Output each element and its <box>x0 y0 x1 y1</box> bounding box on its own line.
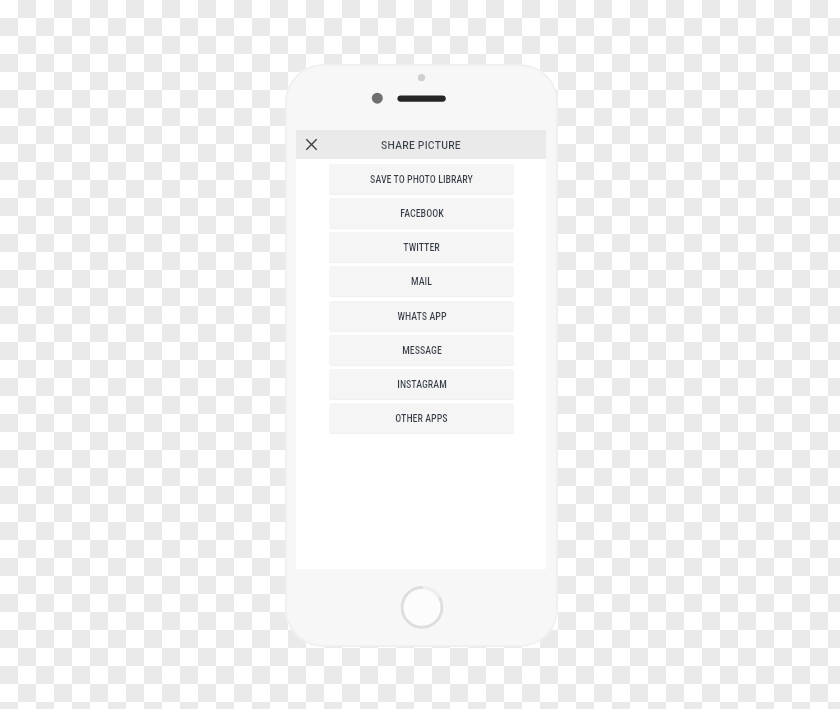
staticText: INSTAGRAM <box>397 379 447 391</box>
button[interactable]: MAIL <box>329 266 514 296</box>
button[interactable]: MESSAGE <box>329 335 514 365</box>
button[interactable]: INSTAGRAM <box>329 369 514 399</box>
button[interactable]: TWITTER <box>329 232 514 262</box>
button[interactable]: FACEBOOK <box>329 198 514 228</box>
button[interactable]: SAVE TO PHOTO LIBRARY <box>329 164 514 194</box>
staticText: TWITTER <box>403 242 440 254</box>
staticText: MESSAGE <box>402 345 442 357</box>
staticText: SAVE TO PHOTO LIBRARY <box>370 174 473 186</box>
staticText: WHATS APP <box>397 311 447 323</box>
staticText: SHARE PICTURE <box>381 139 461 151</box>
button[interactable]: OTHER APPS <box>329 403 514 433</box>
staticText: FACEBOOK <box>400 208 444 220</box>
staticText: OTHER APPS <box>395 413 448 425</box>
button[interactable]: WHATS APP <box>329 301 514 331</box>
button[interactable]: Close <box>301 134 322 155</box>
staticText: MAIL <box>411 276 432 288</box>
